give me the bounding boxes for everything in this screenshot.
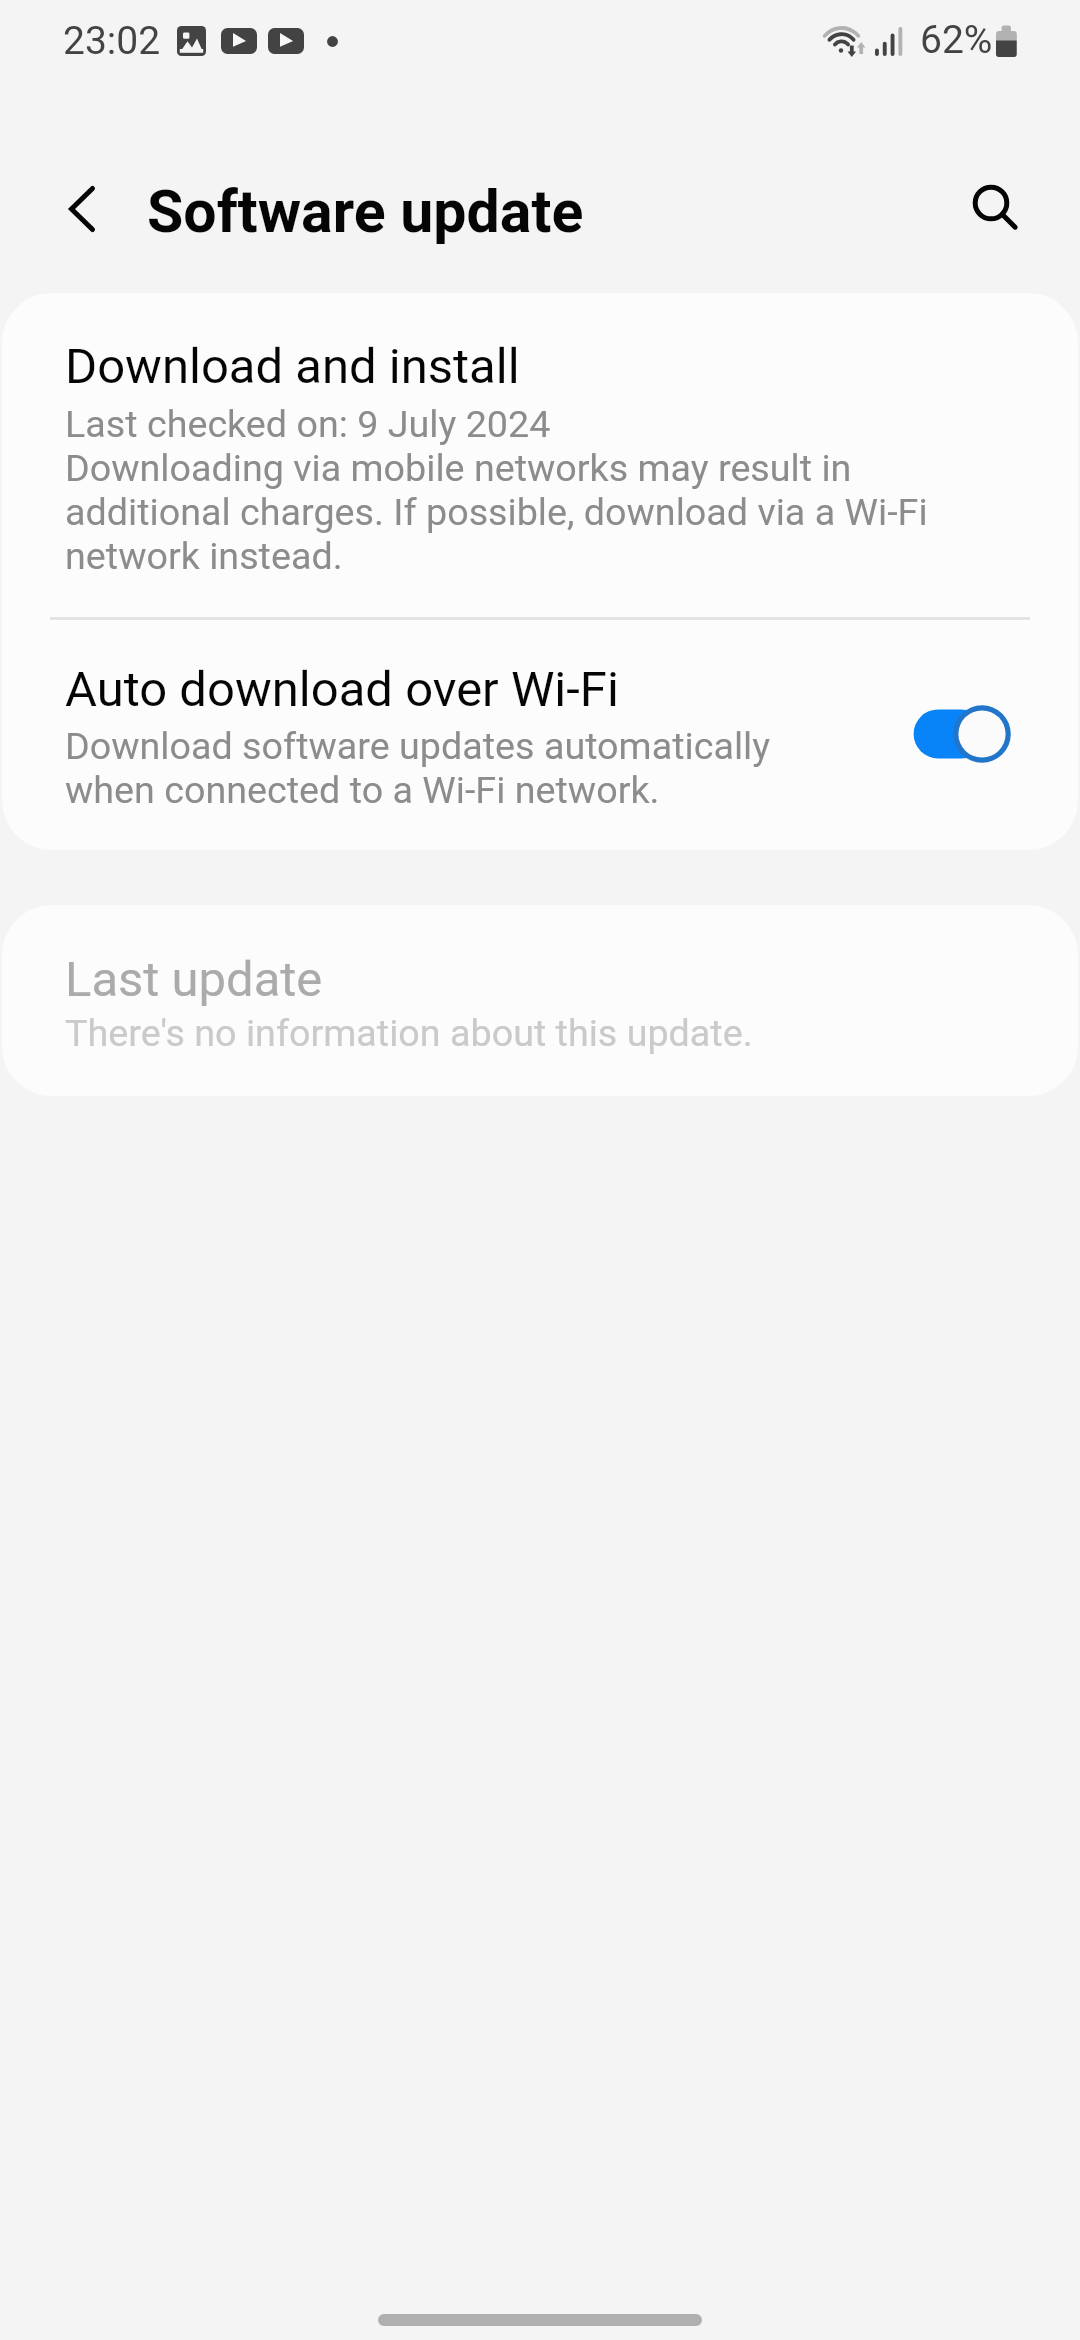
staticText: Software update bbox=[147, 169, 584, 249]
button[interactable]: Search bbox=[928, 140, 1064, 276]
staticText: 62% bbox=[920, 17, 993, 63]
staticText: Last update bbox=[65, 950, 323, 1008]
staticText: Last checked on: 9 July 2024 Downloading… bbox=[65, 402, 960, 578]
button[interactable]: Auto download over Wi-Fi bbox=[900, 700, 1030, 780]
button[interactable]: Last update bbox=[2, 905, 1078, 1096]
staticText: There's no information about this update… bbox=[65, 1011, 753, 1055]
staticText: Download and install bbox=[65, 337, 520, 395]
button[interactable]: Download and install bbox=[2, 293, 1078, 618]
staticText: Download software updates automatically … bbox=[65, 724, 805, 812]
staticText: 23:02 bbox=[63, 18, 161, 64]
button[interactable]: Auto download over Wi-Fi bbox=[2, 620, 1078, 850]
button[interactable]: Back bbox=[14, 141, 150, 277]
staticText: Auto download over Wi-Fi bbox=[65, 660, 619, 718]
